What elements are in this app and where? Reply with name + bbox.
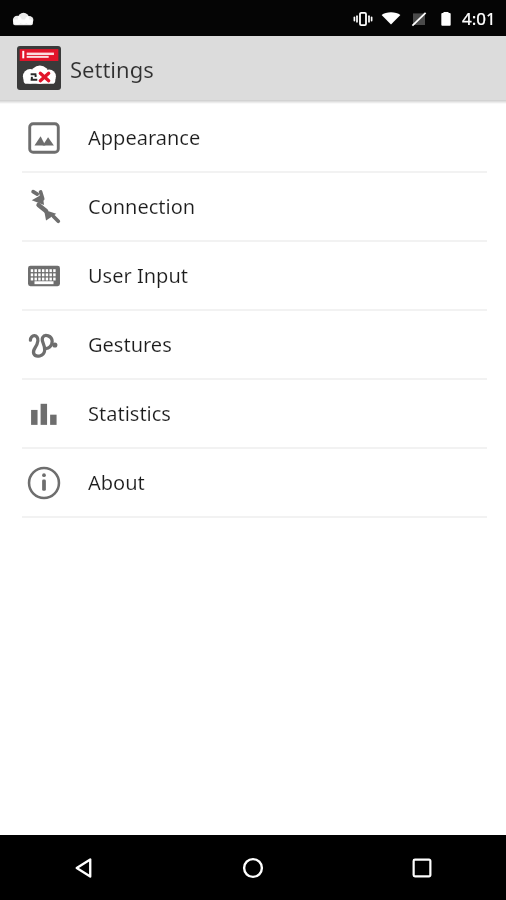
button[interactable]: Statistics — [0, 380, 506, 449]
button[interactable]: Connection — [0, 173, 506, 242]
button[interactable]: Recents — [337, 835, 506, 900]
staticText: User Input — [88, 262, 188, 289]
other: App icon — [17, 46, 61, 90]
button[interactable]: User Input — [0, 242, 506, 311]
staticText: Statistics — [88, 400, 171, 427]
staticText: About — [88, 469, 145, 496]
staticText: Connection — [88, 193, 196, 220]
button[interactable]: Appearance — [0, 104, 506, 173]
staticText: Gestures — [88, 331, 172, 358]
button[interactable]: Home — [168, 835, 337, 900]
staticText: Settings — [70, 54, 154, 84]
button[interactable]: About — [0, 449, 506, 518]
button[interactable]: Gestures — [0, 311, 506, 380]
staticText: Appearance — [88, 124, 201, 151]
staticText: 4:01 — [462, 7, 496, 30]
button[interactable]: Back — [0, 835, 168, 900]
